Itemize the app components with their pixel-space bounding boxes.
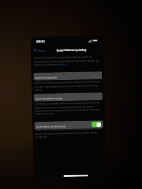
- staticText: Optimalisert batterilading: [36, 124, 66, 128]
- staticText: Avdekking av batteriets ytelsesnivå er n…: [35, 101, 102, 115]
- button[interactable]: Optimalisert batterilading på: [91, 121, 101, 127]
- staticText: Batteritilstand og -lading: [57, 48, 87, 51]
- staticText: Tilbake: [37, 48, 45, 52]
- button[interactable]: Optimalisert batterilading: [34, 120, 103, 130]
- button[interactable]: Tilbake: [34, 48, 45, 52]
- button[interactable]: Maksimal kapasitet: [33, 71, 102, 81]
- button[interactable]: Evne til maksimal ytelse: [34, 92, 103, 102]
- staticText: 96 %: [94, 74, 100, 77]
- staticText: Evne til maksimal ytelse: [36, 96, 63, 100]
- staticText: Maksimal kapasitet: [35, 75, 57, 79]
- staticText: 09:41: [36, 39, 46, 44]
- staticText: Dette er et mål på batterikapasiteten sa…: [34, 80, 102, 91]
- staticText: iPhone lærer av ladevanene dine for å fo…: [35, 127, 103, 138]
- staticText: iPhone viser deg informasjon om batterie…: [34, 55, 101, 66]
